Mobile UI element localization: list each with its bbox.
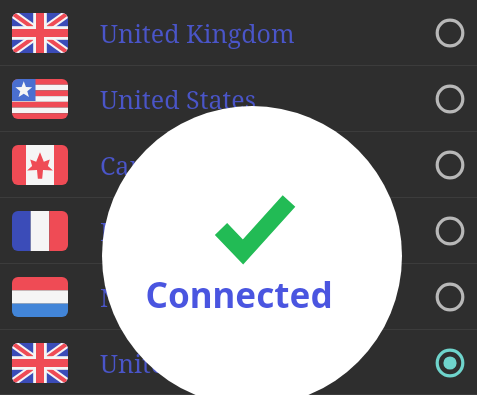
staticText: United Kingdom — [100, 16, 435, 50]
other: Select — [435, 18, 465, 48]
button[interactable]: Netherlands — [0, 264, 477, 330]
staticText: Canada — [100, 148, 435, 182]
other: Select — [435, 282, 465, 312]
button[interactable]: United Kingdom — [0, 0, 477, 66]
staticText: United States — [100, 82, 435, 116]
other: Select — [435, 150, 465, 180]
button[interactable]: United States — [0, 66, 477, 132]
staticText: France — [100, 214, 435, 248]
staticText: Netherlands — [100, 280, 435, 314]
button[interactable]: Canada — [0, 132, 477, 198]
staticText: United Kingdom — [100, 346, 435, 380]
button[interactable]: United Kingdom — [0, 330, 477, 395]
staticText: Connected — [145, 271, 333, 319]
button[interactable]: France — [0, 198, 477, 264]
other: Select — [435, 216, 465, 246]
other: Select — [435, 84, 465, 114]
other: Selected — [435, 348, 465, 378]
